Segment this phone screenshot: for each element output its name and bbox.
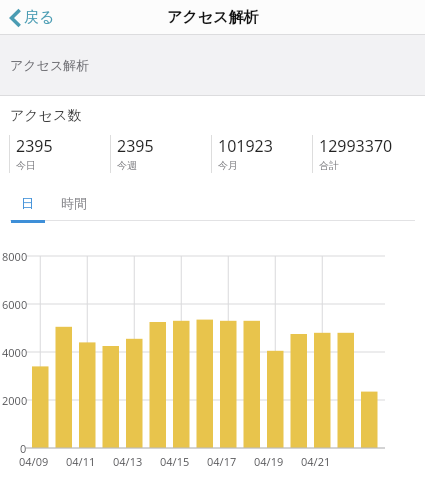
staticText: 8000 [2, 249, 28, 264]
staticText: 12993370 [319, 135, 393, 157]
staticText: 04/19 [254, 454, 284, 469]
staticText: 04/09 [19, 454, 49, 469]
staticText: アクセス解析 [167, 8, 259, 27]
staticText: 時間 [61, 195, 87, 211]
other: 戻る [10, 9, 21, 27]
button[interactable]: 12993370 [312, 135, 413, 173]
staticText: 04/11 [66, 454, 96, 469]
staticText: 04/13 [113, 454, 143, 469]
staticText: 04/15 [160, 454, 190, 469]
staticText: 日 [21, 195, 34, 211]
staticText: 合計 [319, 159, 339, 172]
staticText: 今日 [16, 159, 36, 172]
staticText: 101923 [218, 135, 273, 157]
staticText: 04/17 [207, 454, 237, 469]
staticText: アクセス解析 [10, 57, 90, 73]
staticText: 04/21 [301, 454, 331, 469]
button[interactable]: 戻る [6, 4, 59, 31]
staticText: 今週 [117, 159, 137, 172]
staticText: 6000 [2, 297, 28, 312]
staticText: 2395 [16, 135, 53, 157]
staticText: 今月 [218, 159, 238, 172]
staticText: 2395 [117, 135, 154, 157]
staticText: 戻る [24, 8, 55, 27]
staticText: 0 [20, 441, 27, 456]
button[interactable]: 時間 [44, 195, 104, 211]
staticText: アクセス数 [10, 107, 82, 125]
button[interactable]: 日 [10, 195, 44, 211]
button[interactable]: 2395 [9, 135, 110, 173]
staticText: 4000 [2, 345, 28, 360]
staticText: 2000 [2, 393, 28, 408]
button[interactable]: 2395 [110, 135, 211, 173]
button[interactable]: 101923 [211, 135, 312, 173]
